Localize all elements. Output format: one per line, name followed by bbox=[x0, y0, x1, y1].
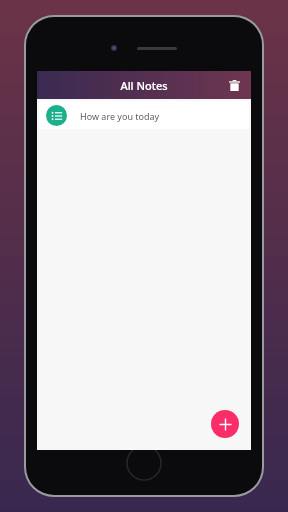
staticText: All Notes bbox=[37, 78, 251, 93]
button[interactable]: Delete bbox=[223, 74, 245, 96]
staticText: How are you today bbox=[80, 110, 160, 122]
button[interactable]: How are you today bbox=[39, 101, 249, 129]
button[interactable]: Add note bbox=[211, 410, 239, 438]
